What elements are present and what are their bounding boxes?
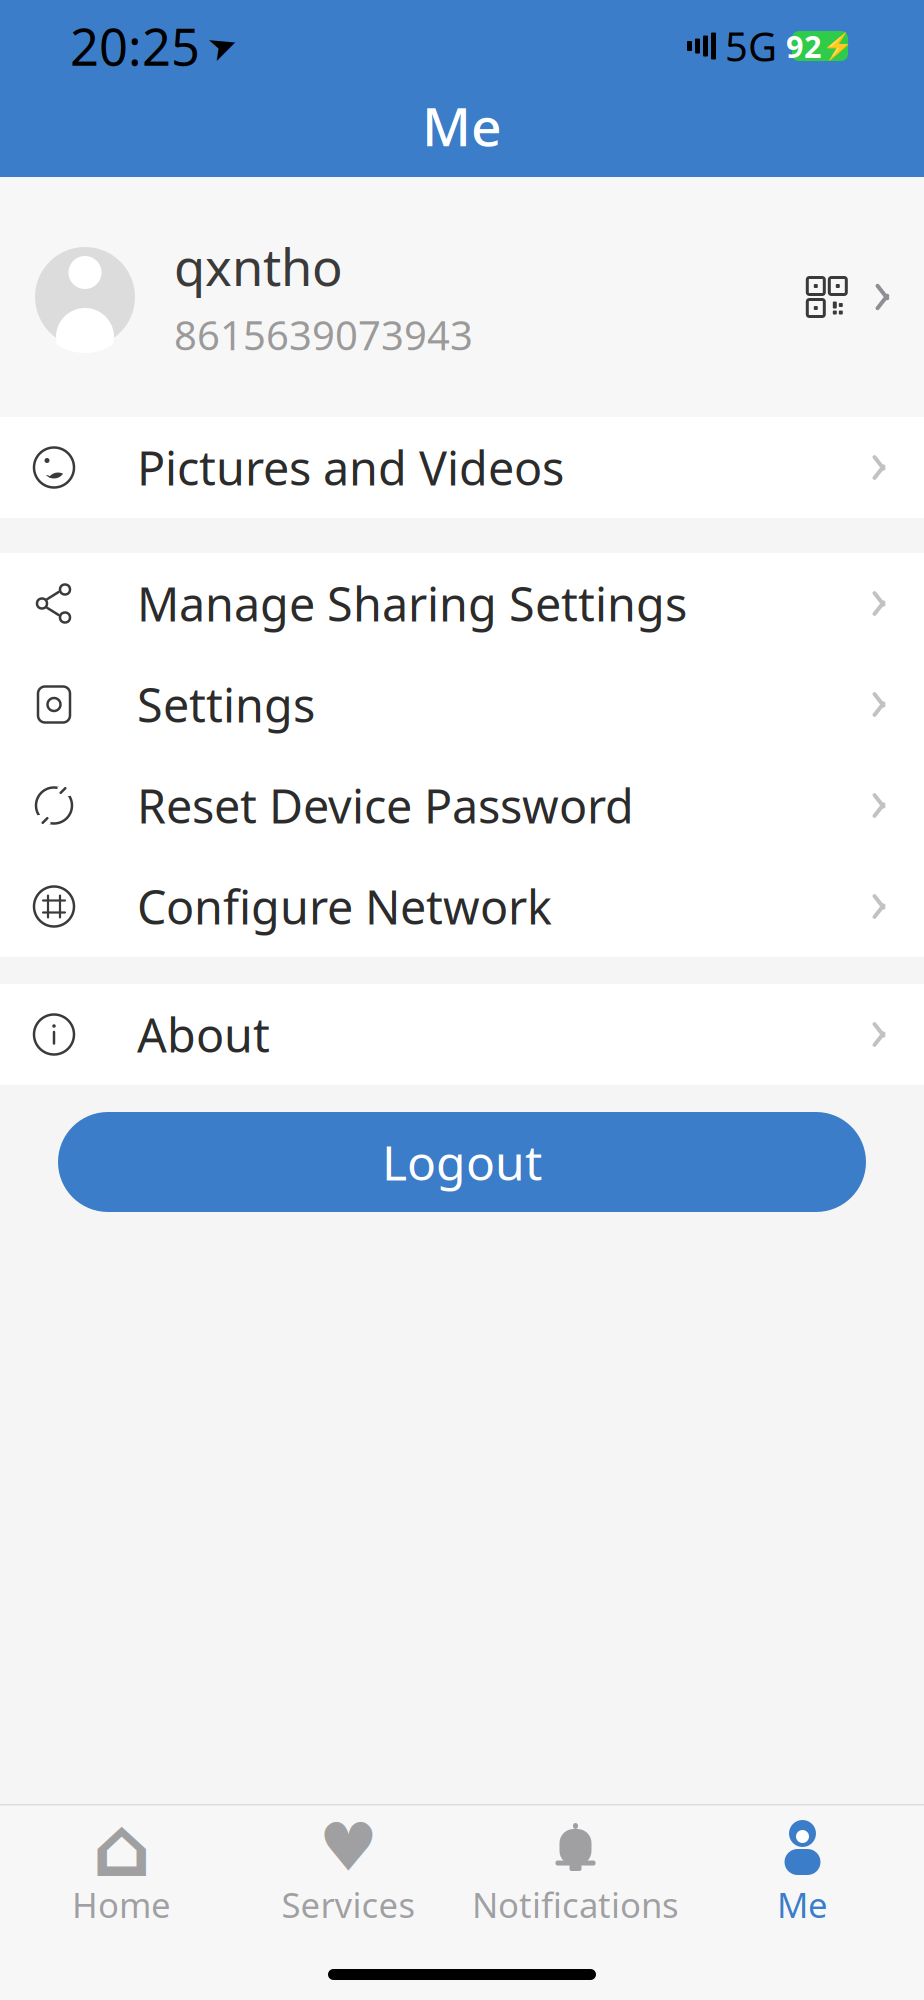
button[interactable]: ♥ bbox=[235, 1805, 462, 1939]
staticText: Settings bbox=[137, 673, 315, 735]
staticText: ♥ bbox=[318, 1810, 378, 1885]
staticText: Configure Network bbox=[137, 875, 552, 937]
staticText: Manage Sharing Settings bbox=[137, 572, 687, 634]
staticText: 5G bbox=[725, 19, 777, 72]
staticText: 8615639073943 bbox=[174, 308, 473, 361]
staticText: 20:25 bbox=[70, 12, 200, 80]
staticText: 92 bbox=[786, 26, 822, 66]
staticText: Me bbox=[777, 1881, 828, 1927]
staticText: ⚡ bbox=[822, 31, 854, 60]
button[interactable]: Notifications bbox=[462, 1805, 689, 1939]
button[interactable]: Me bbox=[689, 1805, 916, 1939]
staticText: ⌂ bbox=[92, 1801, 151, 1894]
staticText: Logout bbox=[382, 1130, 542, 1194]
staticText: Notifications bbox=[472, 1881, 679, 1927]
button[interactable]: Configure Network bbox=[0, 856, 924, 957]
staticText: Home bbox=[72, 1881, 171, 1927]
button[interactable]: qxntho bbox=[0, 177, 924, 417]
button[interactable]: Manage Sharing Settings bbox=[0, 553, 924, 654]
button[interactable]: Logout bbox=[58, 1112, 866, 1212]
staticText: Me bbox=[422, 90, 502, 161]
button[interactable]: ⌂ bbox=[8, 1805, 235, 1939]
button[interactable]: About bbox=[0, 984, 924, 1085]
button[interactable]: Pictures and Videos bbox=[0, 417, 924, 518]
staticText: Pictures and Videos bbox=[137, 436, 564, 498]
staticText: Services bbox=[281, 1881, 415, 1927]
button[interactable]: Reset Device Password bbox=[0, 755, 924, 856]
staticText: Reset Device Password bbox=[137, 774, 634, 836]
button[interactable]: Settings bbox=[0, 654, 924, 755]
staticText: qxntho bbox=[174, 233, 343, 300]
staticText: About bbox=[137, 1003, 270, 1065]
staticText: ➤ bbox=[208, 26, 237, 66]
